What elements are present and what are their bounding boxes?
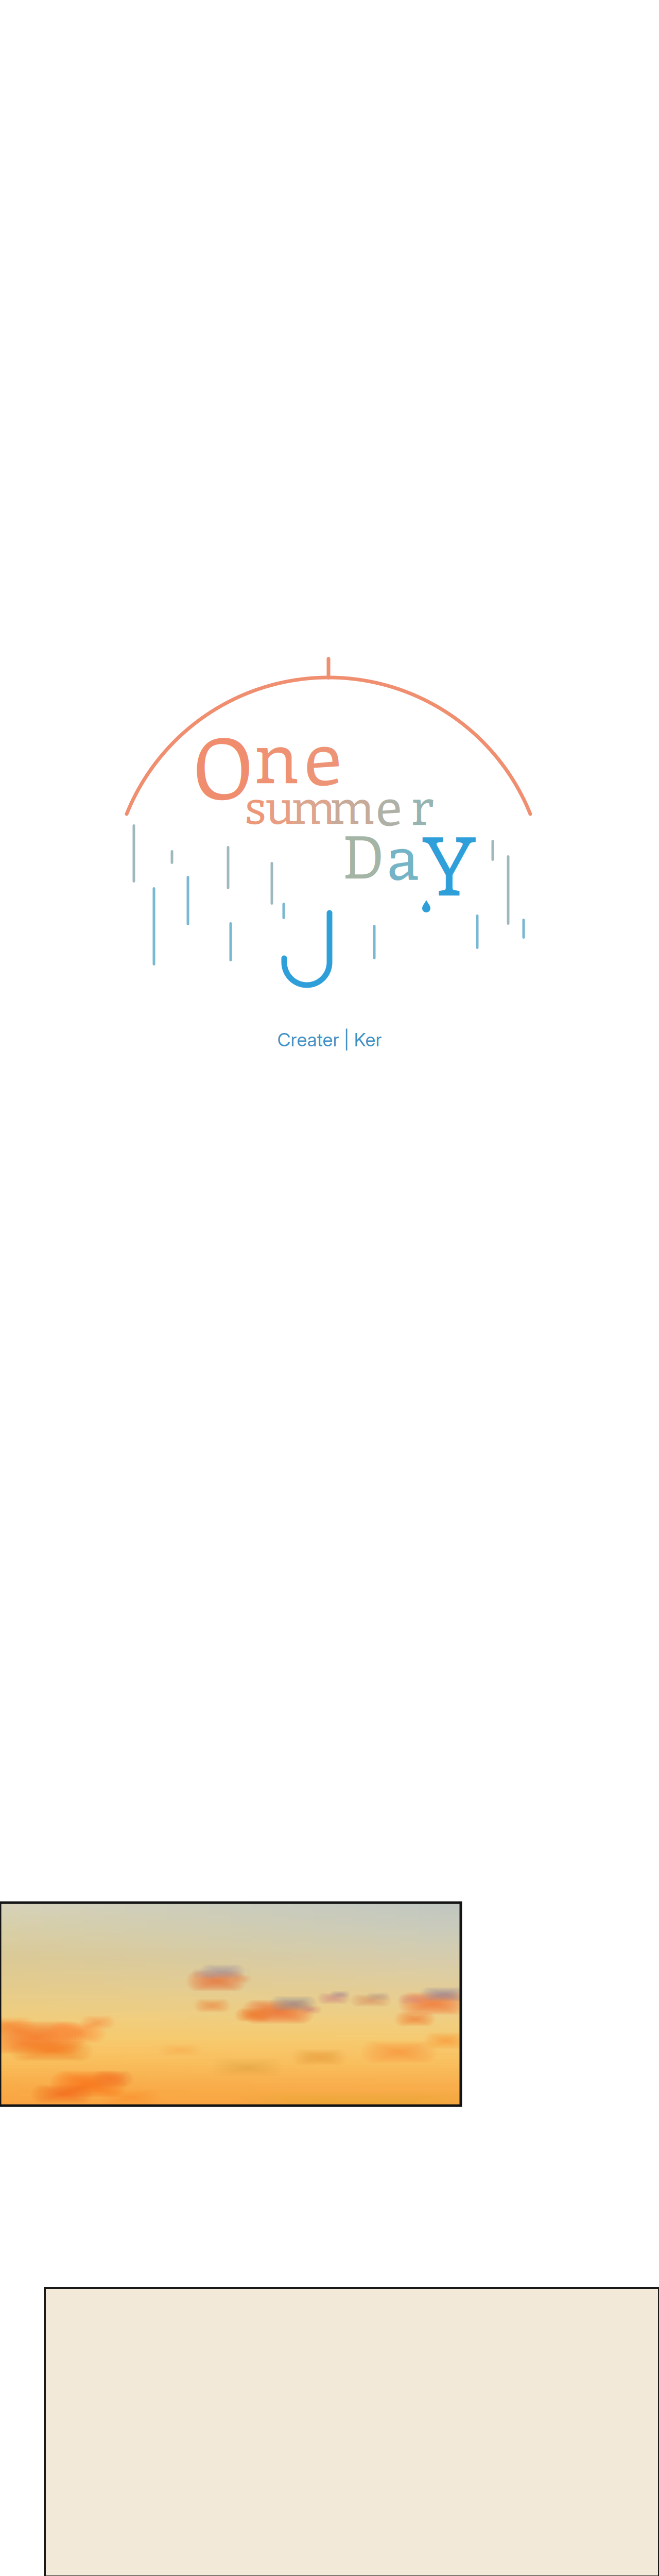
staticText: a bbox=[387, 812, 420, 896]
staticText: Creater | Ker bbox=[277, 1028, 382, 1051]
staticText: n bbox=[254, 704, 299, 802]
staticText: u bbox=[266, 771, 294, 837]
staticText: e bbox=[304, 701, 342, 805]
staticText: D bbox=[342, 816, 384, 894]
staticText: e bbox=[376, 768, 402, 840]
staticText: m bbox=[330, 771, 375, 837]
staticText: s bbox=[245, 771, 266, 837]
staticText: r bbox=[411, 769, 433, 839]
staticText: m bbox=[291, 771, 336, 837]
staticText: Y bbox=[423, 808, 475, 917]
staticText: O bbox=[193, 709, 253, 821]
